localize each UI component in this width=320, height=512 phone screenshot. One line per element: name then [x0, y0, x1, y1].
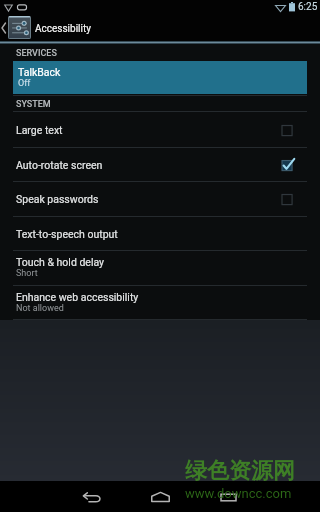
button[interactable]: Auto-rotate screen	[0, 147, 320, 182]
button[interactable]: Touch & hold delay	[0, 250, 320, 285]
staticText: Short	[16, 268, 38, 279]
button[interactable]: Home	[140, 481, 180, 512]
button[interactable]: Text-to-speech output	[0, 216, 320, 251]
staticText: TalkBack	[18, 66, 61, 78]
staticText: Text-to-speech output	[16, 228, 118, 240]
staticText: SERVICES	[16, 48, 57, 59]
staticText: Auto-rotate screen	[16, 159, 103, 171]
staticText: Large text	[16, 124, 63, 136]
button[interactable]: TalkBack	[13, 61, 307, 94]
button[interactable]: Back	[72, 481, 112, 512]
staticText: Speak passwords	[16, 193, 99, 205]
staticText: www.downcc.com	[185, 486, 292, 501]
button[interactable]: Large text	[0, 112, 320, 147]
button[interactable]: Speak passwords	[0, 181, 320, 216]
staticText: 6:25	[298, 1, 318, 13]
staticText: Off	[18, 78, 31, 89]
button[interactable]: Navigate up	[0, 14, 31, 41]
staticText: SYSTEM	[16, 99, 51, 110]
staticText: 绿色资源网	[185, 457, 295, 485]
button[interactable]: Enhance web accessibility	[0, 285, 320, 320]
staticText: Not allowed	[16, 303, 64, 314]
staticText: Accessibility	[35, 23, 91, 35]
button[interactable]: Recent apps	[208, 481, 248, 512]
staticText: Enhance web accessibility	[16, 291, 139, 303]
staticText: Touch & hold delay	[16, 256, 105, 268]
